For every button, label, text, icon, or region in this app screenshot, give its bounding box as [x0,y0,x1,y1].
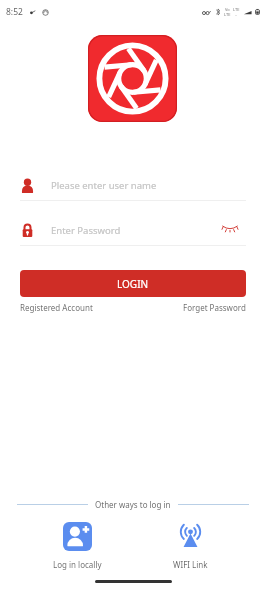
button[interactable]: Registered Account [20,302,93,313]
staticText: LTE [233,7,240,12]
staticText: Other ways to log in [95,499,171,510]
staticText: .. [235,12,238,17]
staticText: WIFI Link [173,559,208,570]
button[interactable]: Log in locally [35,522,119,570]
staticText: 8:52 [6,6,23,18]
button[interactable]: LOGIN [20,270,246,297]
button[interactable]: WIFI Link [148,522,232,570]
button[interactable]: Forget Password [183,302,246,313]
button[interactable]: Toggle password visibility [220,221,240,239]
staticText: Log in locally [53,559,102,570]
staticText: Enter Password [51,224,121,237]
staticText: LOGIN [117,277,149,291]
staticText: Please enter user name [51,179,157,192]
staticText: Vo [225,7,230,12]
staticText: LTE [224,12,231,17]
